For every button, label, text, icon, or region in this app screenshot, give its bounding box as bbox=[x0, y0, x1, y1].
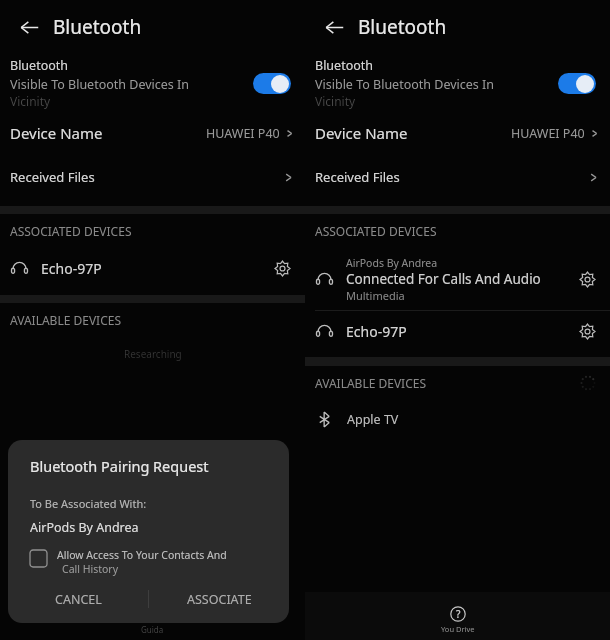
staticText: Received Files bbox=[315, 168, 587, 186]
staticText: ASSOCIATED DEVICES bbox=[10, 223, 132, 239]
staticText: Bluetooth Pairing Request bbox=[30, 456, 209, 476]
staticText: CANCEL bbox=[55, 591, 102, 608]
staticText: Received Files bbox=[10, 168, 282, 186]
button[interactable]: Allow Access To Your Contacts And bbox=[8, 548, 289, 576]
button[interactable]: Received Files bbox=[0, 156, 305, 198]
staticText: Bluetooth bbox=[53, 14, 142, 40]
button[interactable]: Echo-97P bbox=[305, 311, 610, 351]
staticText: ASSOCIATE bbox=[187, 591, 252, 608]
button[interactable]: Bluetooth toggle bbox=[558, 73, 596, 94]
staticText: Allow Access To Your Contacts And bbox=[57, 548, 227, 562]
staticText: Visible To Bluetooth Devices In bbox=[315, 76, 495, 93]
staticText: Multimedia bbox=[346, 288, 405, 303]
button[interactable]: Help bbox=[441, 606, 475, 634]
button[interactable]: Apple TV bbox=[305, 400, 610, 438]
button[interactable]: Device Name bbox=[305, 112, 610, 154]
staticText: Apple TV bbox=[347, 411, 399, 428]
staticText: AVAILABLE DEVICES bbox=[315, 375, 427, 391]
staticText: Guida bbox=[141, 624, 164, 635]
button[interactable]: Bluetooth bbox=[0, 54, 305, 112]
staticText: Vicinity bbox=[315, 93, 356, 109]
button[interactable]: Device settings bbox=[574, 318, 600, 344]
staticText: HUAWEI P40 bbox=[206, 125, 280, 142]
staticText: ? bbox=[456, 607, 461, 621]
button[interactable]: Echo-97P bbox=[0, 248, 305, 288]
staticText: HUAWEI P40 bbox=[511, 125, 585, 142]
staticText: Bluetooth bbox=[10, 57, 69, 74]
button[interactable]: Back bbox=[317, 10, 351, 44]
staticText: AirPods By Andrea bbox=[346, 256, 438, 270]
staticText: AirPods By Andrea bbox=[30, 519, 139, 536]
button[interactable]: Device settings bbox=[574, 266, 600, 292]
staticText: Bluetooth bbox=[358, 14, 447, 40]
staticText: Echo-97P bbox=[41, 259, 269, 278]
button[interactable]: Received Files bbox=[305, 156, 610, 198]
button[interactable]: ASSOCIATE bbox=[149, 578, 289, 620]
staticText: To Be Associated With: bbox=[30, 496, 147, 511]
staticText: Vicinity bbox=[10, 93, 51, 109]
staticText: Connected For Calls And Audio bbox=[346, 270, 541, 288]
staticText: Bluetooth bbox=[315, 57, 374, 74]
staticText: Researching bbox=[124, 347, 182, 361]
button[interactable]: Bluetooth bbox=[305, 54, 610, 112]
staticText: Visible To Bluetooth Devices In bbox=[10, 76, 190, 93]
staticText: AVAILABLE DEVICES bbox=[10, 312, 122, 328]
button[interactable]: Back bbox=[12, 10, 46, 44]
staticText: Device Name bbox=[315, 123, 511, 143]
button[interactable]: Bluetooth toggle bbox=[253, 73, 291, 94]
staticText: You Drive bbox=[441, 624, 475, 634]
staticText: Echo-97P bbox=[346, 322, 574, 341]
button[interactable]: AirPods By Andrea bbox=[305, 248, 610, 310]
button[interactable]: Device Name bbox=[0, 112, 305, 154]
button[interactable]: CANCEL bbox=[8, 578, 148, 620]
button[interactable]: Device settings bbox=[269, 255, 295, 281]
staticText: Call History bbox=[62, 562, 119, 576]
staticText: Device Name bbox=[10, 123, 206, 143]
staticText: ASSOCIATED DEVICES bbox=[315, 223, 437, 239]
